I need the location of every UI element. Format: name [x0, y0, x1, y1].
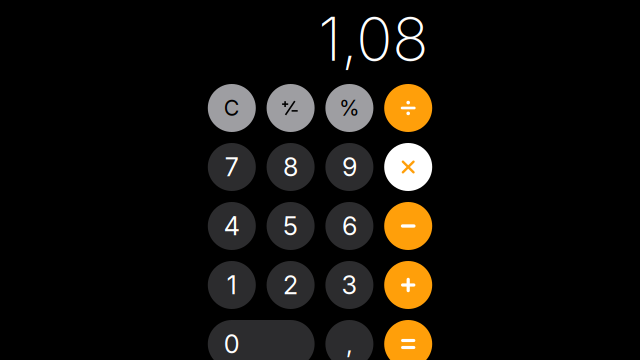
button[interactable]: 3	[325, 261, 373, 309]
button[interactable]: 7	[208, 143, 256, 191]
staticText: ,	[346, 329, 353, 359]
staticText: 3	[341, 270, 357, 300]
button[interactable]: %	[325, 84, 373, 132]
button[interactable]: 9	[325, 143, 373, 191]
button[interactable]: Equals	[384, 320, 432, 360]
button[interactable]: 8	[267, 143, 315, 191]
button[interactable]: 0	[208, 320, 315, 360]
staticText: C	[224, 95, 240, 121]
staticText: 7	[225, 152, 239, 182]
staticText: 2	[283, 270, 298, 300]
button[interactable]: Plus minus	[267, 84, 315, 132]
staticText: 1	[227, 270, 237, 300]
button[interactable]: 2	[267, 261, 315, 309]
button[interactable]: Multiply	[384, 143, 432, 191]
button[interactable]: 4	[208, 202, 256, 250]
button[interactable]: C	[208, 84, 256, 132]
button[interactable]: 1	[208, 261, 256, 309]
button[interactable]: 6	[325, 202, 373, 250]
staticText: 5	[283, 211, 298, 241]
staticText: 8	[283, 152, 298, 182]
button[interactable]: Divide	[384, 84, 432, 132]
staticText: 4	[224, 211, 240, 241]
staticText: 6	[342, 211, 357, 241]
button[interactable]: 5	[267, 202, 315, 250]
button[interactable]: Plus	[384, 261, 432, 309]
button[interactable]: ,	[325, 320, 373, 360]
staticText: 0	[224, 329, 240, 359]
button[interactable]: Minus	[384, 202, 432, 250]
staticText: 1,08	[318, 3, 428, 75]
staticText: 9	[342, 152, 357, 182]
staticText: %	[339, 95, 360, 121]
